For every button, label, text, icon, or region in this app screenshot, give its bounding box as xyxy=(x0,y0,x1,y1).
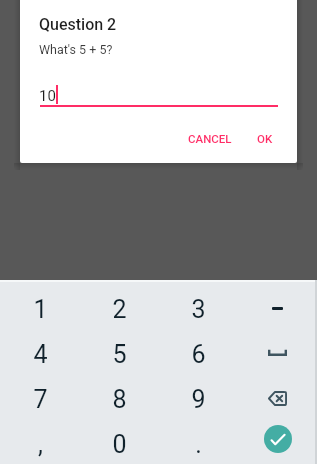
staticText: 9 xyxy=(191,385,206,414)
button[interactable]: 0 xyxy=(80,422,159,464)
button[interactable]: 6 xyxy=(159,332,238,377)
staticText: , xyxy=(38,430,43,459)
button[interactable]: 9 xyxy=(159,377,238,422)
staticText: 4 xyxy=(33,340,48,369)
staticText: Question 2 xyxy=(39,15,117,34)
button[interactable]: , xyxy=(0,422,80,464)
button[interactable]: 2 xyxy=(80,287,159,332)
button[interactable]: OK xyxy=(249,127,281,150)
staticText: 3 xyxy=(191,295,206,324)
staticText: 2 xyxy=(112,295,127,324)
button[interactable]: Done xyxy=(238,422,317,464)
staticText: CANCEL xyxy=(188,132,232,145)
button[interactable]: 10 xyxy=(40,85,278,107)
staticText: OK xyxy=(257,132,273,145)
staticText: 10 xyxy=(39,87,56,105)
staticText: . xyxy=(195,430,202,459)
button[interactable]: 7 xyxy=(0,377,80,422)
staticText: 5 xyxy=(112,340,127,369)
button[interactable]: Backspace xyxy=(238,377,317,422)
button[interactable]: 3 xyxy=(159,287,238,332)
staticText: 7 xyxy=(33,385,48,414)
button[interactable]: Space xyxy=(238,332,317,377)
staticText: 6 xyxy=(191,340,206,369)
button[interactable]: 8 xyxy=(80,377,159,422)
staticText: 8 xyxy=(112,385,127,414)
button[interactable]: 5 xyxy=(80,332,159,377)
button[interactable]: Minus xyxy=(238,287,317,332)
staticText: What's 5 + 5? xyxy=(39,42,113,57)
button[interactable]: 4 xyxy=(0,332,80,377)
button[interactable]: 1 xyxy=(0,287,80,332)
button[interactable]: . xyxy=(159,422,238,464)
button[interactable]: CANCEL xyxy=(180,127,240,150)
staticText: 1 xyxy=(33,295,48,324)
staticText: 0 xyxy=(112,430,127,459)
